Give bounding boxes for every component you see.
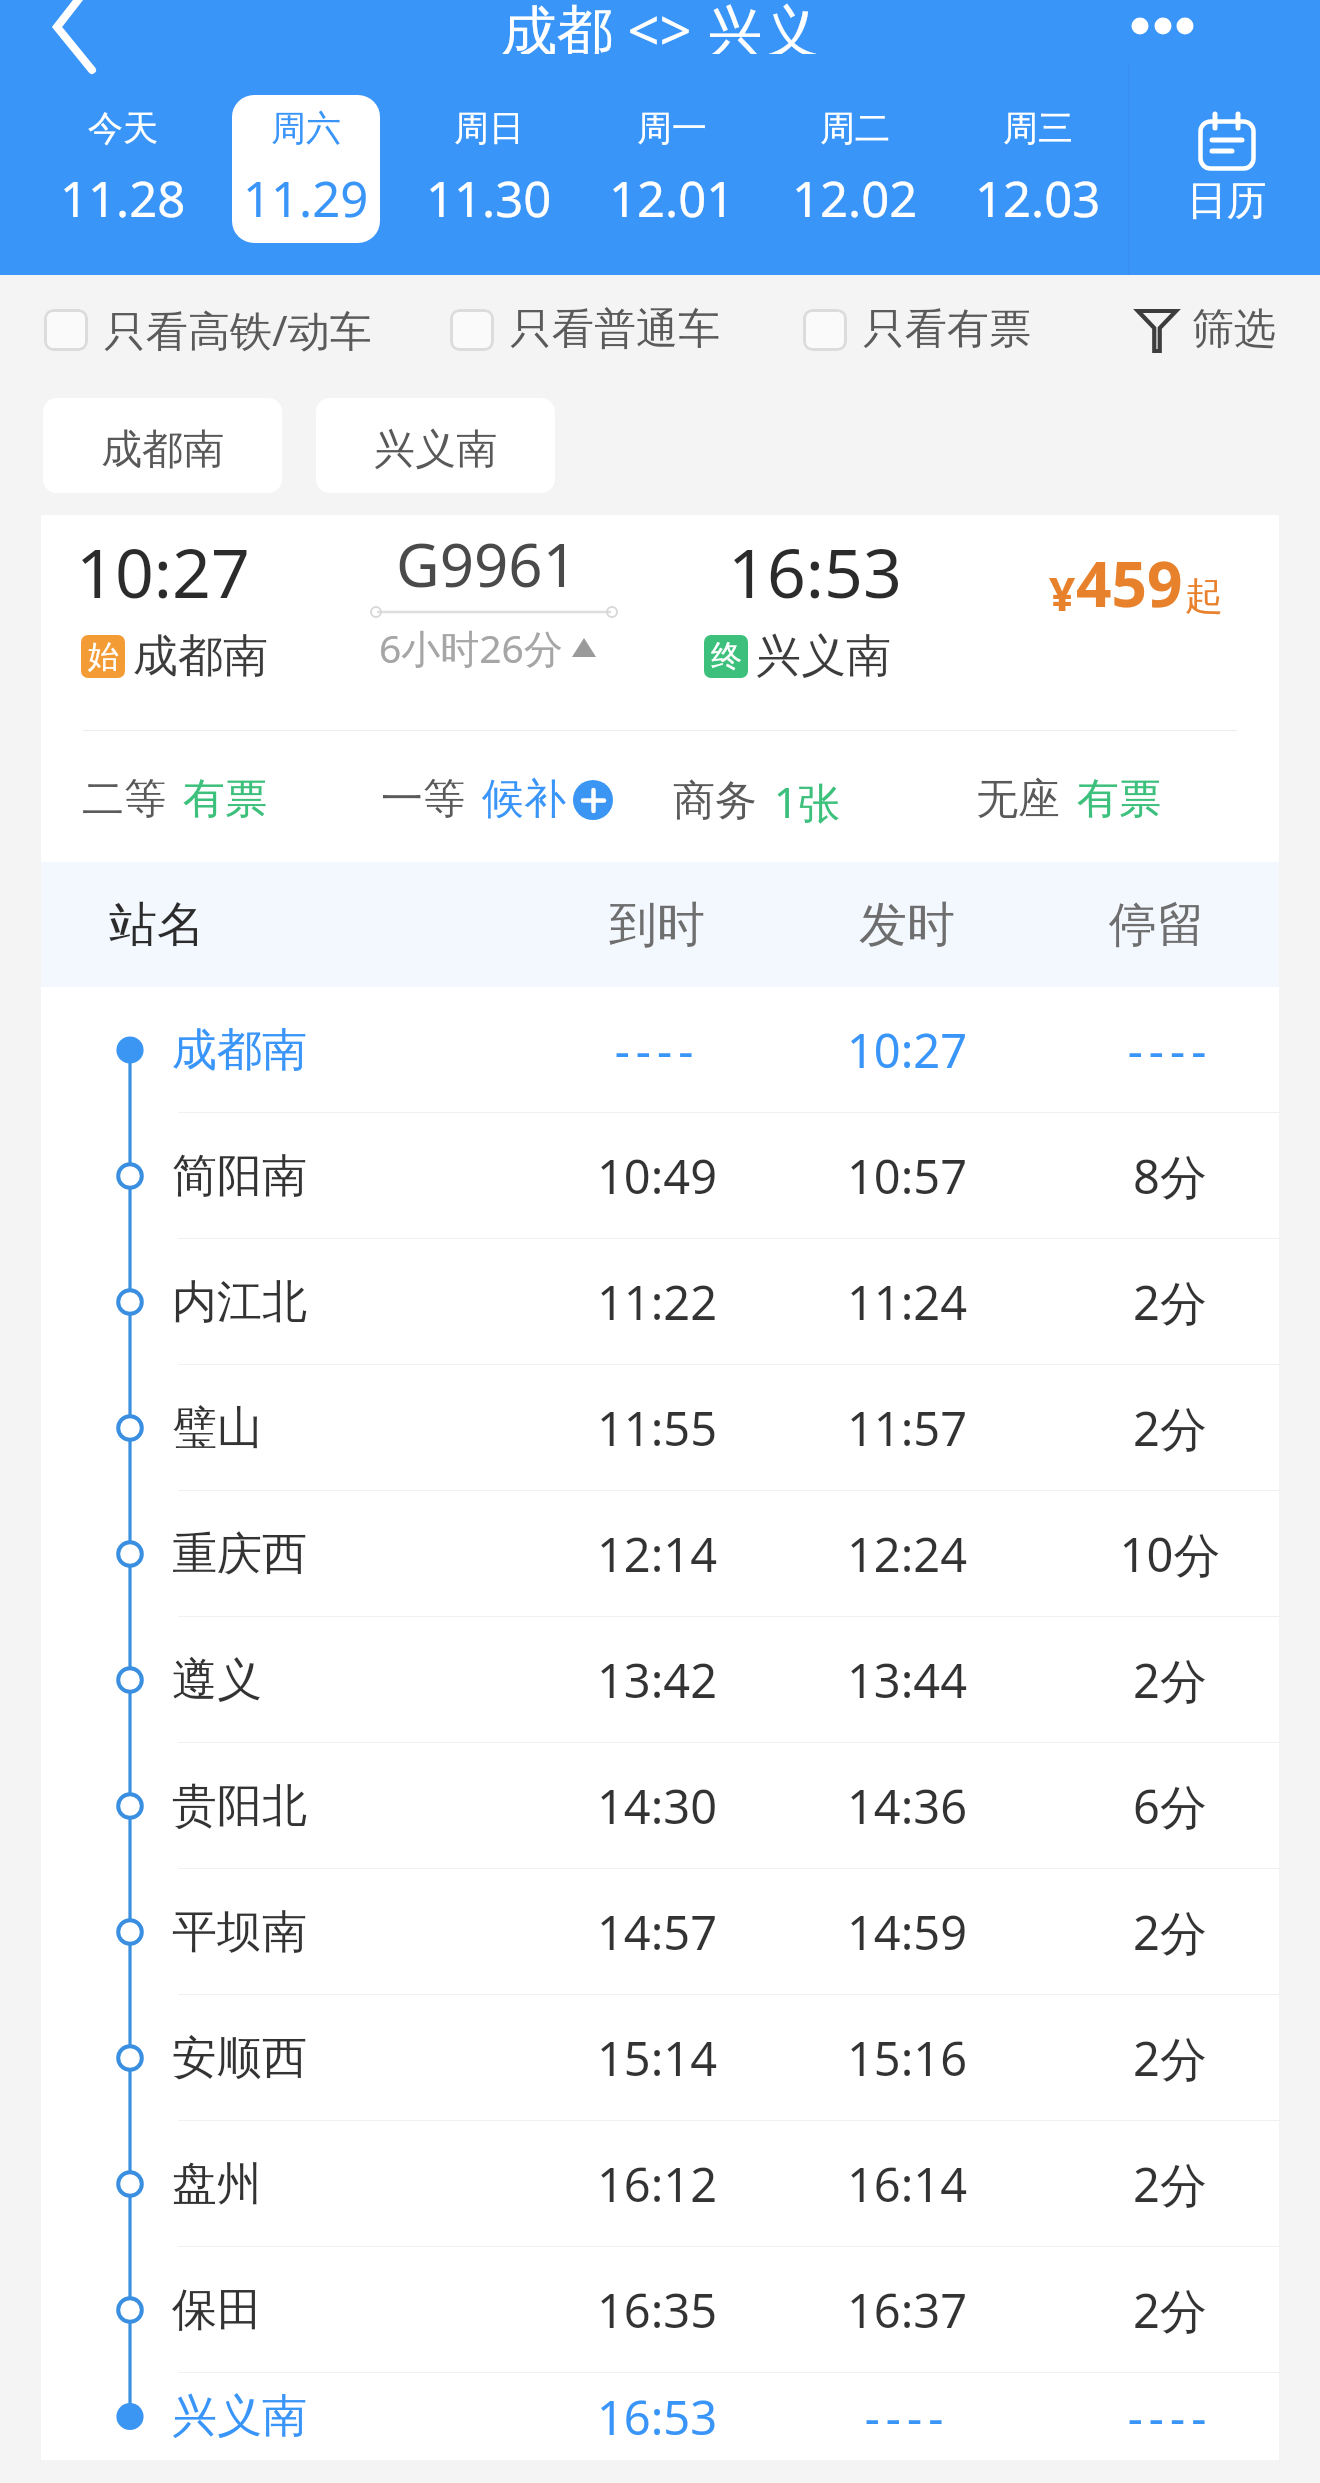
staticText: 商务: [673, 775, 757, 828]
staticText: 12.03: [975, 165, 1101, 232]
staticText: 6分: [1045, 1774, 1279, 1838]
staticText: 14:57: [532, 1900, 782, 1964]
staticText: 筛选: [1192, 303, 1276, 356]
button[interactable]: 简阳南: [41, 1113, 1279, 1239]
staticText: 周一: [637, 106, 707, 150]
staticText: ----: [532, 1018, 782, 1082]
staticText: 只看有票: [863, 303, 1031, 356]
button[interactable]: 保田: [41, 2247, 1279, 2373]
staticText: 平坝南: [172, 1904, 307, 1961]
staticText: 1张: [774, 773, 841, 830]
staticText: ----: [1045, 2385, 1279, 2449]
button[interactable]: 璧山: [41, 1365, 1279, 1491]
staticText: 14:30: [532, 1774, 782, 1838]
staticText: 成都 <> 兴义: [501, 0, 819, 54]
button[interactable]: More options: [1120, 0, 1208, 63]
staticText: 周二: [820, 106, 890, 150]
staticText: 12:24: [782, 1522, 1032, 1586]
staticText: 二等: [82, 773, 166, 826]
staticText: 成都南: [133, 628, 268, 685]
staticText: 11:24: [782, 1270, 1032, 1334]
staticText: 2分: [1045, 2152, 1279, 2216]
button[interactable]: 兴义南: [316, 398, 555, 493]
staticText: 10分: [1045, 1522, 1279, 1586]
staticText: 起: [1185, 572, 1223, 620]
button[interactable]: 内江北: [41, 1239, 1279, 1365]
staticText: 遵义: [172, 1652, 262, 1709]
button[interactable]: 平坝南: [41, 1869, 1279, 1995]
button[interactable]: 重庆西: [41, 1491, 1279, 1617]
button[interactable]: 筛选: [1136, 303, 1276, 356]
staticText: 2分: [1045, 1270, 1279, 1334]
staticText: 13:42: [532, 1648, 782, 1712]
staticText: 459: [1076, 541, 1183, 625]
button[interactable]: 成都南: [43, 398, 282, 493]
staticText: 简阳南: [172, 1148, 307, 1205]
staticText: 12.01: [609, 165, 735, 232]
button[interactable]: 今天: [49, 95, 197, 243]
staticText: 2分: [1045, 1648, 1279, 1712]
staticText: ¥: [1049, 562, 1076, 625]
staticText: 兴义南: [172, 2388, 307, 2445]
staticText: 一等: [381, 773, 465, 826]
staticText: 10:57: [782, 1144, 1032, 1208]
staticText: 安顺西: [172, 2030, 307, 2087]
button[interactable]: 只看有票: [803, 303, 1031, 356]
staticText: 12:14: [532, 1522, 782, 1586]
staticText: 贵阳北: [172, 1778, 307, 1835]
staticText: 11.29: [243, 165, 369, 232]
staticText: 站名: [109, 895, 205, 955]
staticText: 11:55: [532, 1396, 782, 1460]
staticText: 成都南: [101, 424, 224, 476]
staticText: 12.02: [792, 165, 918, 232]
staticText: 盘州: [172, 2156, 262, 2213]
staticText: 重庆西: [172, 1526, 307, 1583]
button[interactable]: 周三: [964, 95, 1112, 243]
staticText: 14:59: [782, 1900, 1032, 1964]
staticText: 璧山: [172, 1400, 262, 1457]
button[interactable]: 盘州: [41, 2121, 1279, 2247]
staticText: 2分: [1045, 2278, 1279, 2342]
staticText: 2分: [1045, 1396, 1279, 1460]
staticText: 成都南: [172, 1022, 307, 1079]
staticText: 16:35: [532, 2278, 782, 2342]
staticText: 8分: [1045, 1144, 1279, 1208]
staticText: 今天: [88, 106, 158, 150]
staticText: 周日: [454, 106, 524, 150]
staticText: 6小时26分: [379, 621, 563, 674]
button[interactable]: 安顺西: [41, 1995, 1279, 2121]
staticText: 无座: [976, 773, 1060, 826]
staticText: 始: [88, 637, 119, 676]
button[interactable]: Back: [16, 0, 132, 63]
button[interactable]: 兴义南: [41, 2373, 1279, 2460]
staticText: ----: [782, 2385, 1032, 2449]
button[interactable]: 只看普通车: [450, 303, 720, 356]
staticText: 16:12: [532, 2152, 782, 2216]
button[interactable]: 周日: [415, 95, 563, 243]
button[interactable]: 周一: [598, 95, 746, 243]
staticText: 10:27: [782, 1018, 1032, 1082]
staticText: 周三: [1003, 106, 1073, 150]
staticText: 有票: [1077, 773, 1161, 826]
button[interactable]: 贵阳北: [41, 1743, 1279, 1869]
button[interactable]: 只看高铁/动车: [44, 301, 372, 358]
staticText: 15:16: [782, 2026, 1032, 2090]
staticText: 只看普通车: [510, 303, 720, 356]
staticText: 只看高铁/动车: [104, 301, 372, 358]
button[interactable]: 10:27: [41, 515, 1279, 862]
button[interactable]: 周六: [232, 95, 380, 243]
button[interactable]: 遵义: [41, 1617, 1279, 1743]
staticText: 16:53: [532, 2385, 782, 2449]
button[interactable]: 成都南: [41, 987, 1279, 1113]
staticText: 11:22: [532, 1270, 782, 1334]
staticText: 2分: [1045, 1900, 1279, 1964]
button[interactable]: 日历: [1129, 63, 1320, 275]
staticText: 2分: [1045, 2026, 1279, 2090]
staticText: 兴义南: [374, 424, 497, 476]
staticText: 停留: [1032, 895, 1279, 955]
staticText: 10:49: [532, 1144, 782, 1208]
button[interactable]: 周二: [781, 95, 929, 243]
staticText: 有票: [183, 773, 267, 826]
staticText: 保田: [172, 2282, 262, 2339]
staticText: 15:14: [532, 2026, 782, 2090]
